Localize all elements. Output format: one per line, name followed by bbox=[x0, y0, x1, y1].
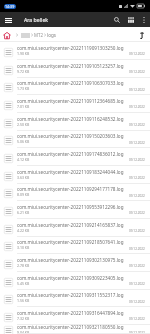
button[interactable]: com.miui.securitycenter-2022110910512325… bbox=[0, 60, 150, 78]
staticText: MT2 bbox=[34, 32, 43, 38]
staticText: com.miui.securitycenter-2022110931155231… bbox=[17, 292, 124, 298]
staticText: 09.12.2022 bbox=[129, 211, 145, 215]
staticText: logs bbox=[47, 32, 56, 38]
button[interactable]: com.miui.securitycenter-2022110911624853… bbox=[0, 113, 150, 131]
staticText: com.miui.securitycenter-2022110921416583… bbox=[17, 222, 124, 228]
button[interactable]: com.miui.securitycenter-2022110921416583… bbox=[0, 219, 150, 237]
staticText: 6.21 KB bbox=[17, 210, 30, 215]
staticText: 14:39 bbox=[5, 4, 15, 9]
staticText: 3.63 KB bbox=[17, 175, 30, 180]
staticText: 09.12.2022 bbox=[129, 317, 145, 321]
staticText: 5.06 KB bbox=[17, 139, 30, 144]
button[interactable]: View mode bbox=[124, 13, 138, 27]
staticText: 09.12.2022 bbox=[129, 229, 145, 233]
staticText: 7.01 KB bbox=[17, 104, 30, 109]
staticText: 3.10 KB bbox=[17, 245, 30, 250]
button[interactable]: com.miui.securitycenter-2022110915020360… bbox=[0, 131, 150, 148]
button[interactable]: com.miui.securitycenter-2022110930922340… bbox=[0, 272, 150, 290]
staticText: 9.72 KB bbox=[17, 69, 30, 74]
staticText: 09.12.2022 bbox=[129, 105, 145, 109]
staticText: 09.12.2022 bbox=[129, 158, 145, 162]
button[interactable]: com.miui.securitycenter-2022110921850764… bbox=[0, 237, 150, 254]
staticText: com.miui.securitycenter-2022110932118055… bbox=[17, 324, 124, 330]
staticText: 4.22 KB bbox=[17, 228, 30, 233]
staticText: com.miui.securitycenter-2022110917483601… bbox=[17, 151, 124, 157]
staticText: 2.50 KB bbox=[17, 122, 30, 127]
staticText: com.miui.securitycenter-2022110910630703… bbox=[17, 80, 124, 86]
button[interactable]: com.miui.securitycenter-2022110911236468… bbox=[0, 95, 150, 113]
staticText: com.miui.securitycenter-2022110911236468… bbox=[17, 98, 124, 104]
button[interactable]: More options bbox=[138, 14, 150, 26]
staticText: com.miui.securitycenter-2022110930922340… bbox=[17, 275, 124, 281]
staticText: 09.12.2022 bbox=[129, 247, 145, 251]
staticText: 1.73 KB bbox=[17, 86, 30, 91]
button[interactable]: com.miui.securitycenter-2022110931155231… bbox=[0, 290, 150, 307]
staticText: 1.56 KB bbox=[17, 298, 30, 303]
button[interactable]: com.miui.securitycenter-2022110910630703… bbox=[0, 78, 150, 95]
staticText: com.miui.securitycenter-2022110921850764… bbox=[17, 239, 124, 245]
staticText: 8.09 KB bbox=[17, 192, 30, 197]
staticText: com.miui.securitycenter-2022110910512325… bbox=[17, 63, 124, 69]
button[interactable]: com.miui.securitycenter-2022110931644789… bbox=[0, 307, 150, 325]
staticText: 9.04 KB bbox=[17, 330, 30, 333]
staticText: 09.12.2022 bbox=[129, 282, 145, 286]
button[interactable]: Home bbox=[2, 31, 11, 40]
staticText: 1.90 KB bbox=[17, 51, 30, 56]
staticText: com.miui.securitycenter-2022110930213097… bbox=[17, 257, 124, 263]
button[interactable]: com.miui.securitycenter-2022110930213097… bbox=[0, 254, 150, 272]
staticText: 09.12.2022 bbox=[129, 52, 145, 56]
staticText: 5.45 KB bbox=[17, 281, 30, 286]
staticText: 09.12.2022 bbox=[129, 300, 145, 304]
staticText: Ara bellek bbox=[24, 16, 49, 23]
staticText: com.miui.securitycenter-2022110911624853… bbox=[17, 116, 124, 122]
staticText: com.miui.securitycenter-2022110929417717… bbox=[17, 186, 124, 192]
button[interactable]: Search bbox=[110, 13, 124, 27]
staticText: com.miui.securitycenter-2022110918324404… bbox=[17, 169, 124, 175]
staticText: com.miui.securitycenter-2022110915020360… bbox=[17, 133, 124, 139]
staticText: 09.12.2022 bbox=[129, 141, 145, 145]
staticText: 09.12.2022 bbox=[129, 70, 145, 74]
button[interactable]: com.miui.securitycenter-2022110955391229… bbox=[0, 201, 150, 219]
button[interactable]: Sort bbox=[137, 30, 147, 40]
staticText: 09.12.2022 bbox=[129, 264, 145, 268]
staticText: 09.12.2022 bbox=[129, 176, 145, 180]
button[interactable]: com.miui.securitycenter-2022110917483601… bbox=[0, 148, 150, 166]
button[interactable]: com.miui.securitycenter-2022110929417717… bbox=[0, 184, 150, 201]
staticText: com.miui.securitycenter-2022111909130325… bbox=[17, 45, 124, 51]
staticText: com.miui.securitycenter-2022110931644789… bbox=[17, 310, 124, 316]
staticText: 09.12.2022 bbox=[129, 331, 145, 334]
staticText: 09.12.2022 bbox=[129, 194, 145, 198]
staticText: 7.32 KB bbox=[17, 316, 30, 321]
button[interactable]: com.miui.securitycenter-2022111909130325… bbox=[0, 42, 150, 60]
staticText: 09.12.2022 bbox=[129, 123, 145, 127]
staticText: 2.78 KB bbox=[17, 263, 30, 268]
button[interactable]: com.miui.securitycenter-2022110932118055… bbox=[0, 325, 150, 334]
button[interactable]: Navigation menu bbox=[2, 14, 14, 26]
staticText: 4.12 KB bbox=[17, 157, 30, 162]
staticText: com.miui.securitycenter-2022110955391229… bbox=[17, 204, 124, 210]
staticText: 09.12.2022 bbox=[129, 88, 145, 92]
button[interactable]: com.miui.securitycenter-2022110918324404… bbox=[0, 166, 150, 184]
